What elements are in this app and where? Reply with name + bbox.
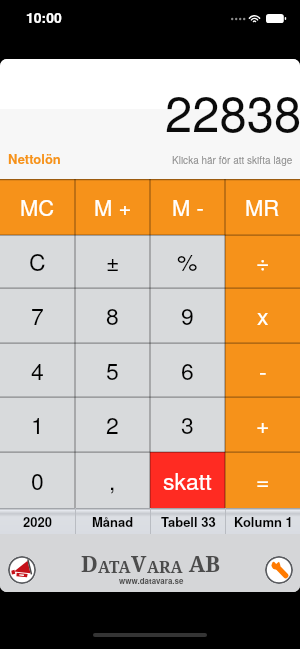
button[interactable]: 4 — [0, 343, 75, 397]
staticText: D — [81, 548, 98, 578]
staticText: www.datavara.se — [119, 575, 184, 586]
staticText: 0 — [31, 464, 44, 497]
staticText: M + — [94, 191, 132, 223]
button[interactable]: + — [225, 397, 300, 452]
staticText: 6 — [181, 354, 194, 387]
staticText: 10:00 — [26, 7, 62, 27]
staticText: 2020 — [23, 512, 52, 531]
staticText: skatt — [163, 464, 212, 497]
staticText: 7 — [31, 299, 44, 332]
staticText: 8 — [106, 299, 119, 332]
staticText: Klicka här för att skifta läge — [172, 153, 293, 167]
button[interactable]: Månad — [76, 508, 150, 534]
staticText: MC — [20, 191, 55, 223]
staticText: , — [109, 464, 116, 497]
button[interactable]: ÷ — [225, 235, 300, 288]
button[interactable]: Announcements — [8, 556, 36, 584]
button[interactable]: 7 — [0, 288, 75, 343]
staticText: + — [256, 408, 270, 441]
button[interactable]: x — [225, 288, 300, 343]
staticText: Kolumn 1 — [234, 512, 293, 531]
button[interactable]: , — [75, 452, 150, 508]
button[interactable]: ± — [75, 235, 150, 288]
staticText: ÷ — [256, 245, 270, 278]
staticText: MR — [245, 191, 280, 223]
button[interactable]: 5 — [75, 343, 150, 397]
button[interactable]: Kolumn 1 — [226, 508, 300, 534]
button[interactable]: 6 — [150, 343, 225, 397]
button[interactable]: 9 — [150, 288, 225, 343]
staticText: 1 — [31, 408, 44, 441]
staticText: x — [257, 299, 269, 332]
staticText: C — [29, 245, 46, 278]
button[interactable]: 3 — [150, 397, 225, 452]
button[interactable]: Settings — [265, 556, 293, 584]
button[interactable]: C — [0, 235, 75, 288]
button[interactable]: % — [150, 235, 225, 288]
button[interactable]: 2 — [75, 397, 150, 452]
button[interactable]: 2020 — [0, 508, 75, 534]
staticText: % — [177, 245, 198, 278]
staticText: ± — [106, 245, 120, 278]
staticText: 3 — [181, 408, 194, 441]
button[interactable]: MR — [225, 179, 300, 235]
button[interactable]: 8 — [75, 288, 150, 343]
button[interactable]: M + — [75, 179, 150, 235]
staticText: 4 — [31, 354, 44, 387]
button[interactable]: Nettolön — [0, 109, 61, 168]
staticText: 5 — [106, 354, 119, 387]
button[interactable]: MC — [0, 179, 75, 235]
staticText: Månad — [92, 512, 134, 531]
button[interactable]: 1 — [0, 397, 75, 452]
staticText: V — [131, 548, 147, 578]
staticText: 2 — [106, 408, 119, 441]
staticText: AB — [183, 548, 221, 578]
staticText: M - — [172, 191, 204, 223]
staticText: = — [256, 464, 270, 497]
staticText: - — [259, 354, 267, 387]
staticText: ARA — [147, 556, 183, 578]
button[interactable]: Tabell 33 — [151, 508, 225, 534]
button[interactable]: M - — [150, 179, 225, 235]
button[interactable]: 0 — [0, 452, 75, 508]
staticText: 9 — [181, 299, 194, 332]
button[interactable]: = — [225, 452, 300, 508]
staticText: Tabell 33 — [161, 512, 216, 531]
button[interactable]: - — [225, 343, 300, 397]
staticText: 22838 — [165, 76, 300, 146]
button[interactable]: skatt — [150, 452, 225, 508]
staticText: ATA — [98, 556, 131, 578]
